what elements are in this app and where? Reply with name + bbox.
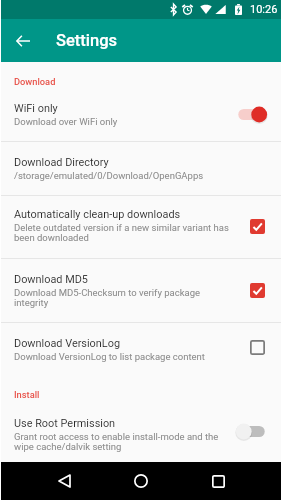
staticText: Download MD5 [14, 273, 88, 286]
button[interactable]: Automatically clean-up downloads [0, 196, 282, 258]
button[interactable]: Back [3, 21, 43, 61]
button[interactable]: Home [123, 462, 159, 500]
button[interactable]: Switch off [236, 423, 267, 440]
staticText: Delete outdated version if a new similar… [14, 222, 233, 244]
button[interactable]: Switch on [236, 106, 267, 123]
staticText: Install [14, 389, 40, 400]
button[interactable]: Unchecked [247, 337, 267, 357]
button[interactable]: Recent apps [200, 462, 236, 500]
button[interactable]: Download VersionLog [0, 323, 282, 373]
staticText: Settings [56, 31, 118, 50]
staticText: Download [14, 76, 56, 87]
button[interactable]: WiFi only [0, 90, 282, 141]
staticText: 10:26 [250, 3, 278, 16]
staticText: Grant root access to enable install-mode… [14, 431, 222, 453]
staticText: Download VersionLog to list package cont… [14, 351, 205, 362]
staticText: Download MD5-Checksum to verify package … [14, 287, 233, 309]
staticText: Use Root Permission [14, 417, 116, 430]
staticText: /storage/emulated/0/Download/OpenGApps [14, 170, 204, 181]
button[interactable]: Back [46, 462, 82, 500]
staticText: Automatically clean-up downloads [14, 208, 181, 221]
staticText: Download Directory [14, 156, 109, 169]
staticText: Download VersionLog [14, 337, 121, 350]
button[interactable]: Checked [247, 216, 267, 236]
button[interactable]: Use Root Permission [0, 403, 282, 462]
button[interactable]: Download MD5 [0, 259, 282, 322]
button[interactable]: Download Directory [0, 142, 282, 195]
staticText: Download over WiFi only [14, 116, 118, 127]
button[interactable]: Checked [247, 280, 267, 300]
staticText: WiFi only [14, 102, 58, 115]
